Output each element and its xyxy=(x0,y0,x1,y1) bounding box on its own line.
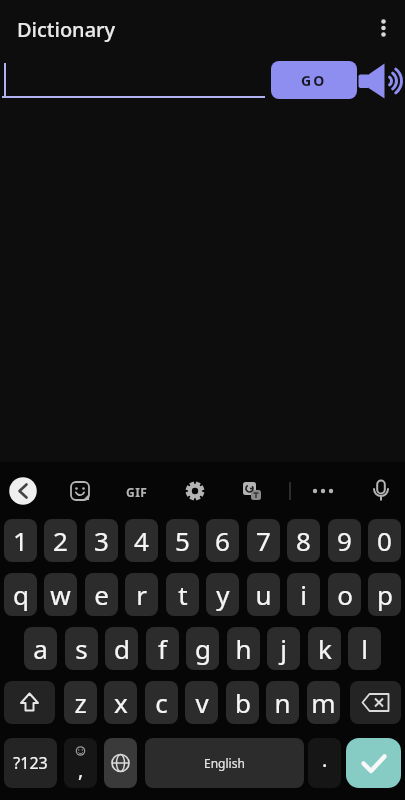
staticText: e xyxy=(94,577,109,612)
staticText: y xyxy=(216,577,230,612)
staticText: r xyxy=(136,577,147,612)
staticText: 4 xyxy=(134,523,149,558)
staticText: k xyxy=(318,631,332,666)
staticText: d xyxy=(114,631,130,666)
staticText: English xyxy=(204,755,245,771)
staticText: b xyxy=(235,685,251,720)
staticText: 2 xyxy=(53,523,68,558)
staticText: o xyxy=(337,577,353,612)
staticText: h xyxy=(235,631,252,666)
staticText: 0 xyxy=(377,523,392,558)
staticText: x xyxy=(114,685,128,720)
staticText: GO xyxy=(301,71,327,90)
staticText: f xyxy=(158,631,167,666)
staticText: t xyxy=(178,577,188,612)
staticText: u xyxy=(255,577,272,612)
staticText: w xyxy=(50,577,71,612)
staticText: ?123 xyxy=(13,752,48,774)
staticText: c xyxy=(155,685,168,720)
staticText: l xyxy=(361,631,368,666)
staticText: p xyxy=(377,577,393,612)
staticText: , xyxy=(78,756,84,783)
staticText: g xyxy=(195,631,211,666)
staticText: GIF xyxy=(126,484,148,500)
staticText: 6 xyxy=(215,523,230,558)
staticText: s xyxy=(75,631,88,666)
staticText: Dictionary xyxy=(17,16,116,43)
staticText: 7 xyxy=(256,523,271,558)
staticText: j xyxy=(280,631,287,666)
staticText: i xyxy=(300,577,307,612)
staticText: . xyxy=(322,746,328,773)
staticText: v xyxy=(195,685,209,720)
staticText: 5 xyxy=(175,523,190,558)
staticText: 8 xyxy=(296,523,311,558)
staticText: m xyxy=(311,685,336,720)
staticText: n xyxy=(274,685,291,720)
staticText: 1 xyxy=(13,523,28,558)
staticText: q xyxy=(13,577,29,612)
staticText: 3 xyxy=(94,523,109,558)
staticText: z xyxy=(74,685,87,720)
staticText: a xyxy=(33,631,48,666)
staticText: 9 xyxy=(337,523,352,558)
